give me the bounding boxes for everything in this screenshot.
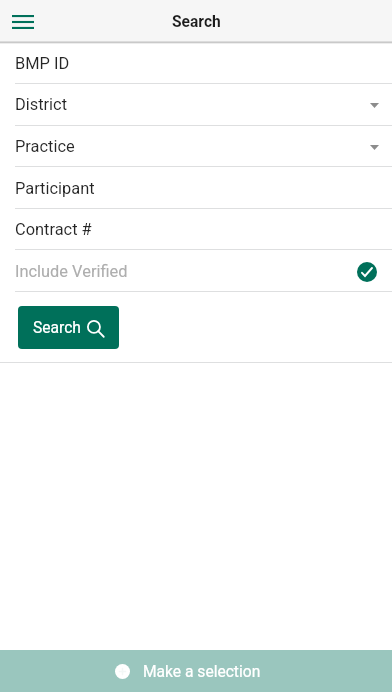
button[interactable]: District xyxy=(0,83,392,125)
button[interactable]: Open District list xyxy=(356,93,378,115)
staticText: BMP ID xyxy=(15,54,70,73)
button[interactable]: Open Practice list xyxy=(356,135,378,157)
staticText: Search xyxy=(33,319,81,337)
button[interactable]: Search xyxy=(18,306,119,349)
staticText: Practice xyxy=(15,137,75,156)
button[interactable]: Include Verified xyxy=(0,250,392,292)
staticText: Make a selection xyxy=(143,663,261,681)
button[interactable]: Participant xyxy=(0,167,392,209)
staticText: Include Verified xyxy=(15,262,128,281)
button[interactable]: Toggle include verified xyxy=(357,262,377,282)
staticText: Search xyxy=(172,13,221,31)
button[interactable]: Open navigation menu xyxy=(0,0,46,42)
staticText: Participant xyxy=(15,179,95,198)
staticText: District xyxy=(15,95,68,114)
button[interactable]: Practice xyxy=(0,125,392,167)
button[interactable]: Make a selection xyxy=(0,650,392,692)
staticText: Contract # xyxy=(15,220,92,239)
button[interactable]: Contract # xyxy=(0,208,392,250)
button[interactable]: BMP ID xyxy=(0,42,392,84)
